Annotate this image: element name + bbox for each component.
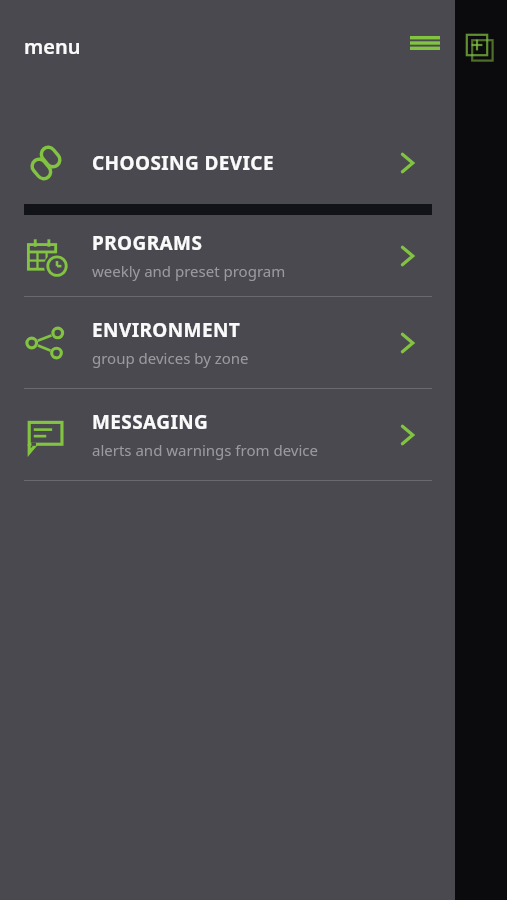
button[interactable]: PROGRAMS [0, 215, 455, 296]
button[interactable]: Add [456, 24, 504, 72]
button[interactable]: Menu [403, 21, 447, 65]
staticText: MESSAGING [92, 409, 209, 435]
button[interactable]: MESSAGING [0, 389, 455, 480]
staticText: ENVIRONMENT [92, 317, 241, 343]
staticText: PROGRAMS [92, 230, 203, 256]
staticText: weekly and preset program [92, 261, 286, 281]
staticText: group devices by zone [92, 348, 249, 368]
staticText: CHOOSING DEVICE [92, 150, 274, 176]
button[interactable]: CHOOSING DEVICE [0, 122, 455, 204]
staticText: menu [24, 33, 81, 60]
button[interactable]: ENVIRONMENT [0, 297, 455, 388]
staticText: alerts and warnings from device [92, 440, 318, 460]
